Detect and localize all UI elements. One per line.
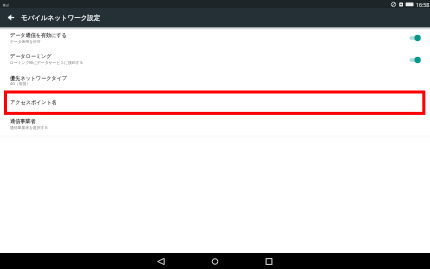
button[interactable]: Back xyxy=(4,9,18,23)
button[interactable]: Home xyxy=(188,253,242,269)
button[interactable] xyxy=(0,29,430,50)
staticText: モバイルネットワーク設定 xyxy=(21,14,101,22)
staticText: 優先ネットワークタイプ xyxy=(10,75,67,81)
button[interactable]: Back xyxy=(134,253,188,269)
button[interactable] xyxy=(0,71,430,91)
staticText: 16:58 xyxy=(416,1,430,8)
staticText: データ使用を許可 xyxy=(10,39,41,44)
button[interactable]: Toggle xyxy=(406,32,424,44)
staticText: 4G（推奨） xyxy=(10,81,31,86)
staticText: 通信事業者 xyxy=(10,118,36,124)
button[interactable] xyxy=(0,91,430,116)
staticText: 通信事業者を選択する xyxy=(10,125,49,130)
staticText: ローミング時にデータサービスに接続する xyxy=(10,60,84,65)
staticText: データ通信を有効にする xyxy=(10,32,67,38)
button[interactable] xyxy=(0,50,430,71)
button[interactable] xyxy=(0,116,430,137)
button[interactable]: Recent apps xyxy=(242,253,296,269)
staticText: データローミング xyxy=(10,53,52,59)
staticText: アクセスポイント名 xyxy=(10,99,57,105)
button[interactable]: Toggle xyxy=(406,54,424,66)
